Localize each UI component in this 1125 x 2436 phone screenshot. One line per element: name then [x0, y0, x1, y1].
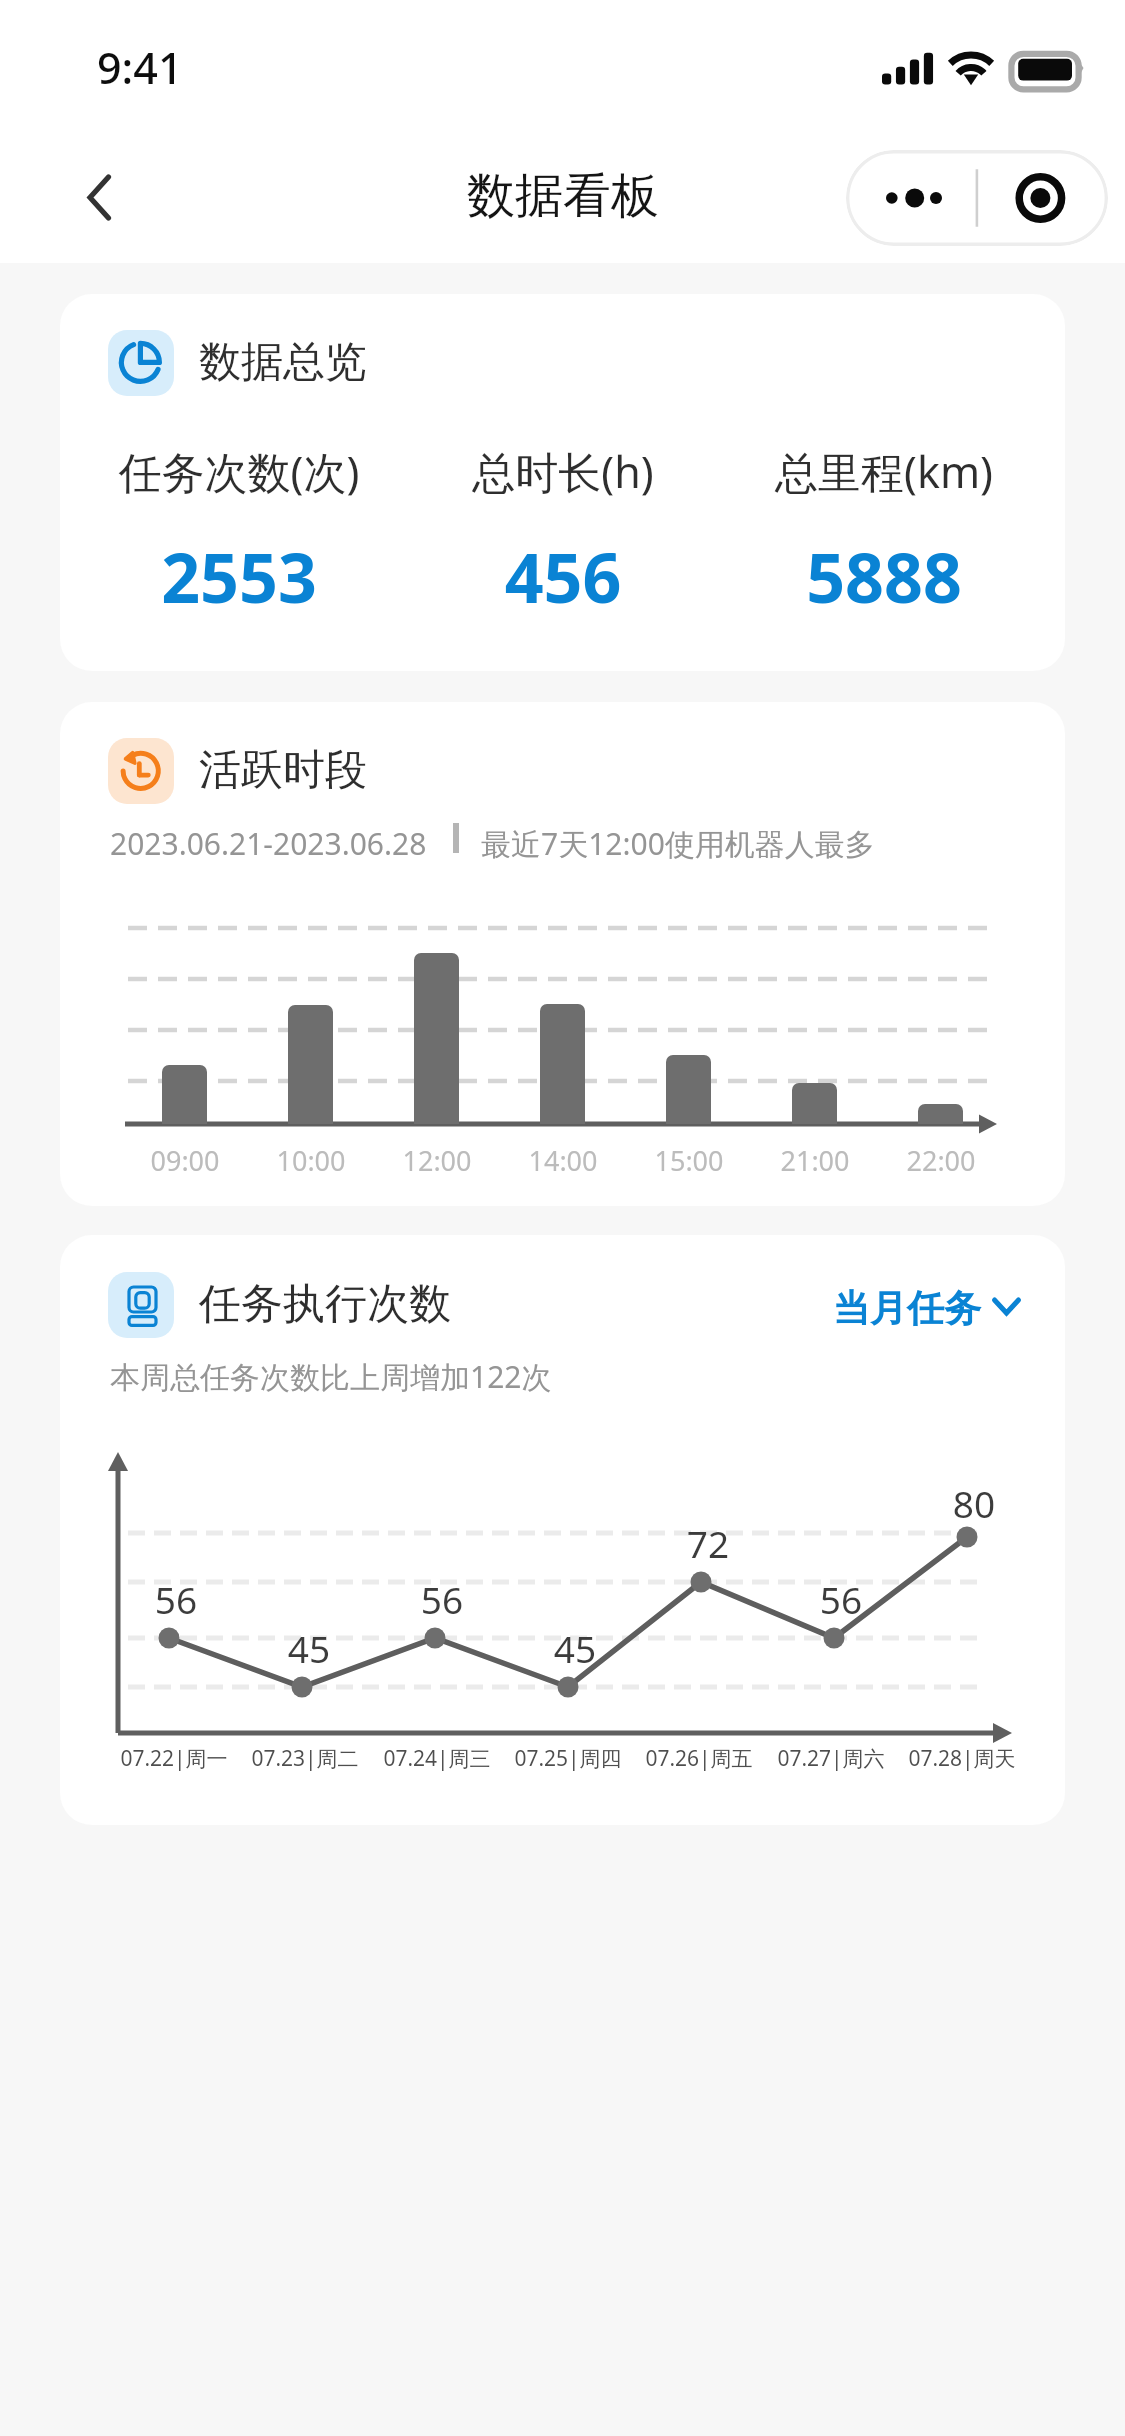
staticText: 22:00	[841, 1142, 1041, 1179]
staticText: 总里程(km)	[684, 442, 1065, 501]
staticText: 数据总览	[199, 336, 367, 389]
staticText: 当月任务	[833, 1285, 981, 1332]
staticText: 本周总任务次数比上周增加122次	[110, 1356, 552, 1397]
staticText: 56	[741, 1574, 941, 1624]
staticText: 07.25|周四	[468, 1744, 668, 1773]
staticText: 45	[209, 1623, 409, 1673]
staticText: 15:00	[589, 1142, 789, 1179]
staticText: 72	[608, 1518, 808, 1568]
staticText: 07.24|周三	[337, 1744, 537, 1773]
staticText: 14:00	[463, 1142, 663, 1179]
staticText: 21:00	[715, 1142, 915, 1179]
button[interactable]: 当月任务	[833, 1285, 1022, 1332]
staticText: 80	[874, 1478, 1065, 1528]
staticText: 456	[363, 530, 763, 623]
staticText: 07.26|周五	[599, 1744, 799, 1773]
staticText: 45	[475, 1623, 675, 1673]
button[interactable]: Back	[48, 147, 148, 247]
staticText: 09:00	[85, 1142, 285, 1179]
staticText: 最近7天12:00使用机器人最多	[481, 823, 875, 864]
staticText: 56	[76, 1574, 276, 1624]
staticText: 10:00	[211, 1142, 411, 1179]
staticText: 07.27|周六	[731, 1744, 931, 1773]
staticText: 数据看板	[467, 166, 659, 226]
staticText: 12:00	[337, 1142, 537, 1179]
staticText: 56	[342, 1574, 542, 1624]
staticText: 9:41	[97, 38, 183, 97]
staticText: 07.28|周天	[862, 1744, 1062, 1773]
button[interactable]: More options	[846, 150, 1108, 246]
staticText: 2553	[60, 530, 439, 623]
staticText: 任务执行次数	[199, 1278, 451, 1331]
staticText: 活跃时段	[199, 744, 367, 797]
staticText: 5888	[684, 530, 1065, 623]
staticText: 任务次数(次)	[60, 442, 439, 501]
staticText: 总时长(h)	[363, 442, 763, 501]
staticText: 2023.06.21-2023.06.28	[110, 823, 427, 864]
staticText: 07.22|周一	[74, 1744, 274, 1773]
staticText: 07.23|周二	[205, 1744, 405, 1773]
